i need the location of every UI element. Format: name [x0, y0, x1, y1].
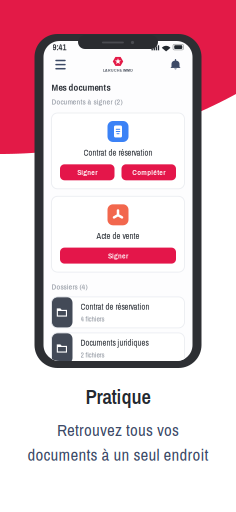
staticText: Retrouvez tous vos [57, 418, 179, 441]
button[interactable]: Signer [60, 164, 114, 180]
staticText: Pratique [85, 382, 150, 410]
button[interactable]: Menu [51, 56, 69, 74]
button[interactable]: Compléter [121, 164, 176, 180]
staticText: Signer [77, 167, 97, 177]
staticText: Documents à signer (2) [51, 96, 122, 107]
button[interactable]: Documents juridiques [51, 333, 184, 364]
staticText: 9:41 [52, 41, 66, 53]
staticText: LA RUCHE IMMO [103, 67, 133, 73]
staticText: Contrat de réservation [83, 147, 152, 158]
staticText: Contrat de réservation [80, 301, 149, 312]
staticText: Mes documents [51, 81, 110, 94]
staticText: documents à un seul endroit [27, 443, 208, 466]
staticText: 2 fichiers [80, 350, 104, 360]
staticText: Documents juridiques [80, 337, 148, 348]
staticText: Dossiers (4) [51, 281, 87, 292]
staticText: Acte de vente [96, 230, 139, 242]
button[interactable]: Signer [60, 248, 176, 264]
staticText: 4 fichiers [80, 314, 104, 324]
button[interactable]: Contrat de réservation [51, 297, 184, 328]
staticText: Signer [108, 250, 128, 261]
button[interactable]: Notifications [166, 56, 184, 74]
staticText: Compléter [132, 167, 165, 177]
